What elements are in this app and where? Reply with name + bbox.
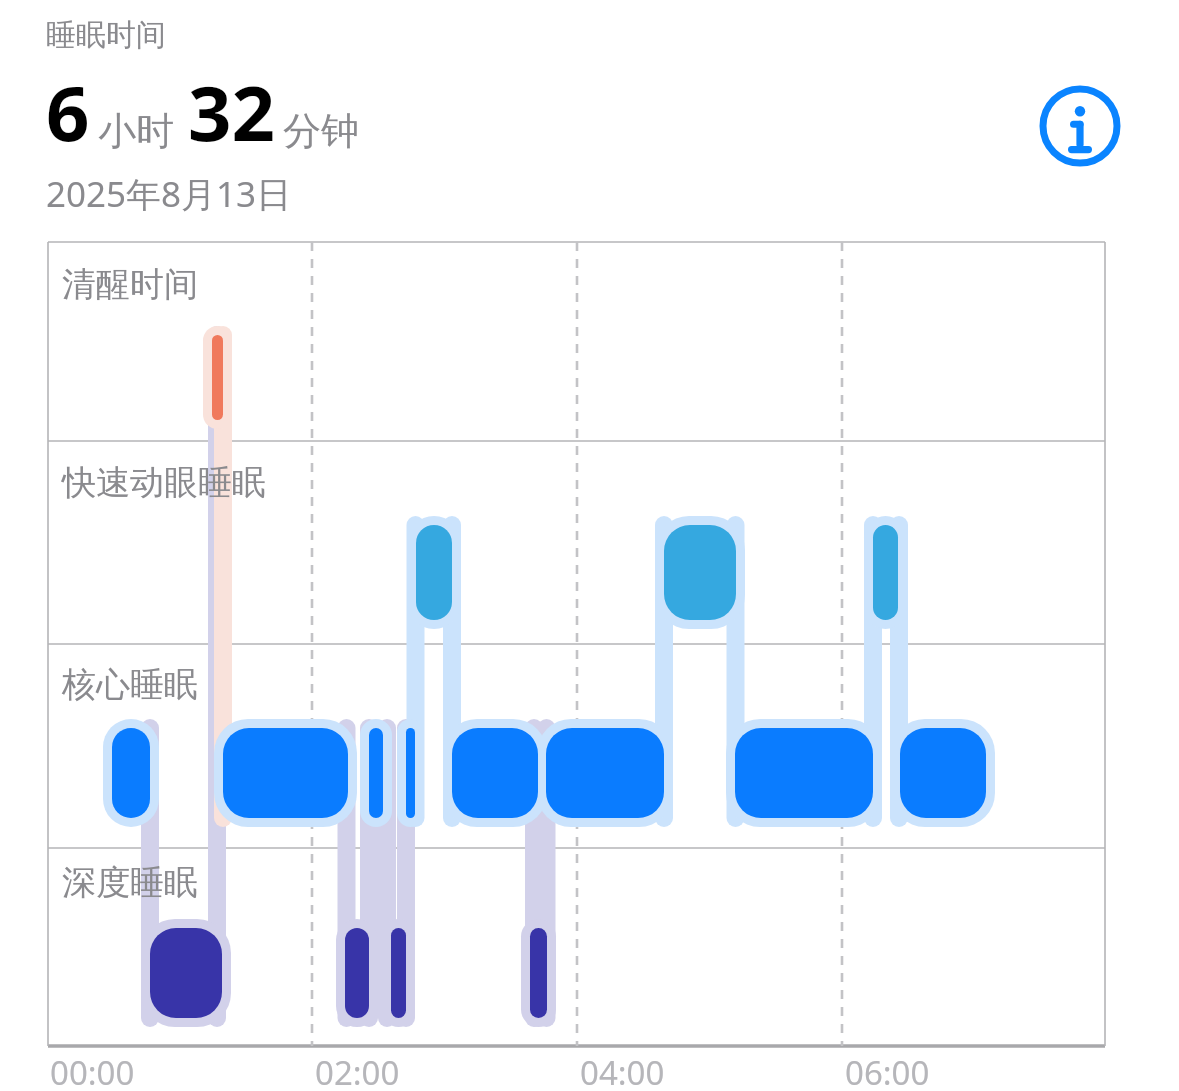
staticText: 2025年8月13日 [46,170,292,218]
staticText: 清醒时间 [62,263,198,306]
staticText: 睡眠时间 [46,16,166,54]
staticText: 06:00 [845,1050,930,1091]
staticText: 核心睡眠 [62,663,198,706]
staticText: 深度睡眠 [62,861,198,904]
staticText: 02:00 [315,1050,400,1091]
button[interactable]: 关于睡眠时间信息 [1034,80,1126,172]
staticText: 00:00 [50,1050,135,1091]
staticText: 6 [46,60,90,164]
staticText: 快速动眼睡眠 [62,461,266,504]
staticText: 32 [188,60,275,164]
staticText: 04:00 [580,1050,665,1091]
staticText: 分钟 [283,107,359,155]
staticText: 小时 [98,107,174,155]
